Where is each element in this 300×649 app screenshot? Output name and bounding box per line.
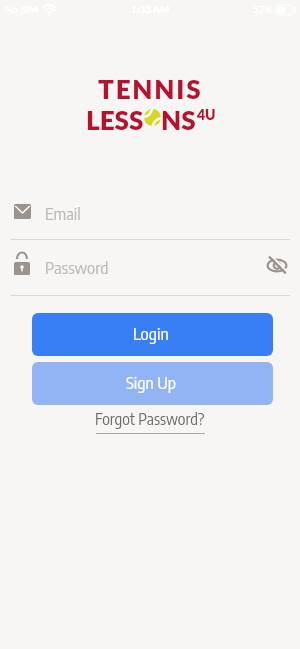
button[interactable]: Forgot Password? [0,409,300,429]
staticText: 4U [197,106,216,123]
staticText: Password [45,256,109,277]
staticText: Email [45,202,81,223]
staticText: TENNIS [98,73,203,104]
button[interactable]: Sign Up [32,362,273,405]
staticText: 1:35 AM [131,3,170,15]
staticText: Forgot Password? [95,409,205,429]
staticText: No SIM [5,3,39,15]
staticText: NS [161,104,196,135]
button[interactable]: Login [32,313,273,356]
staticText: 57% [253,3,273,15]
staticText: LESS [86,104,144,135]
staticText: Sign Up [126,371,176,392]
staticText: Login [133,322,169,343]
